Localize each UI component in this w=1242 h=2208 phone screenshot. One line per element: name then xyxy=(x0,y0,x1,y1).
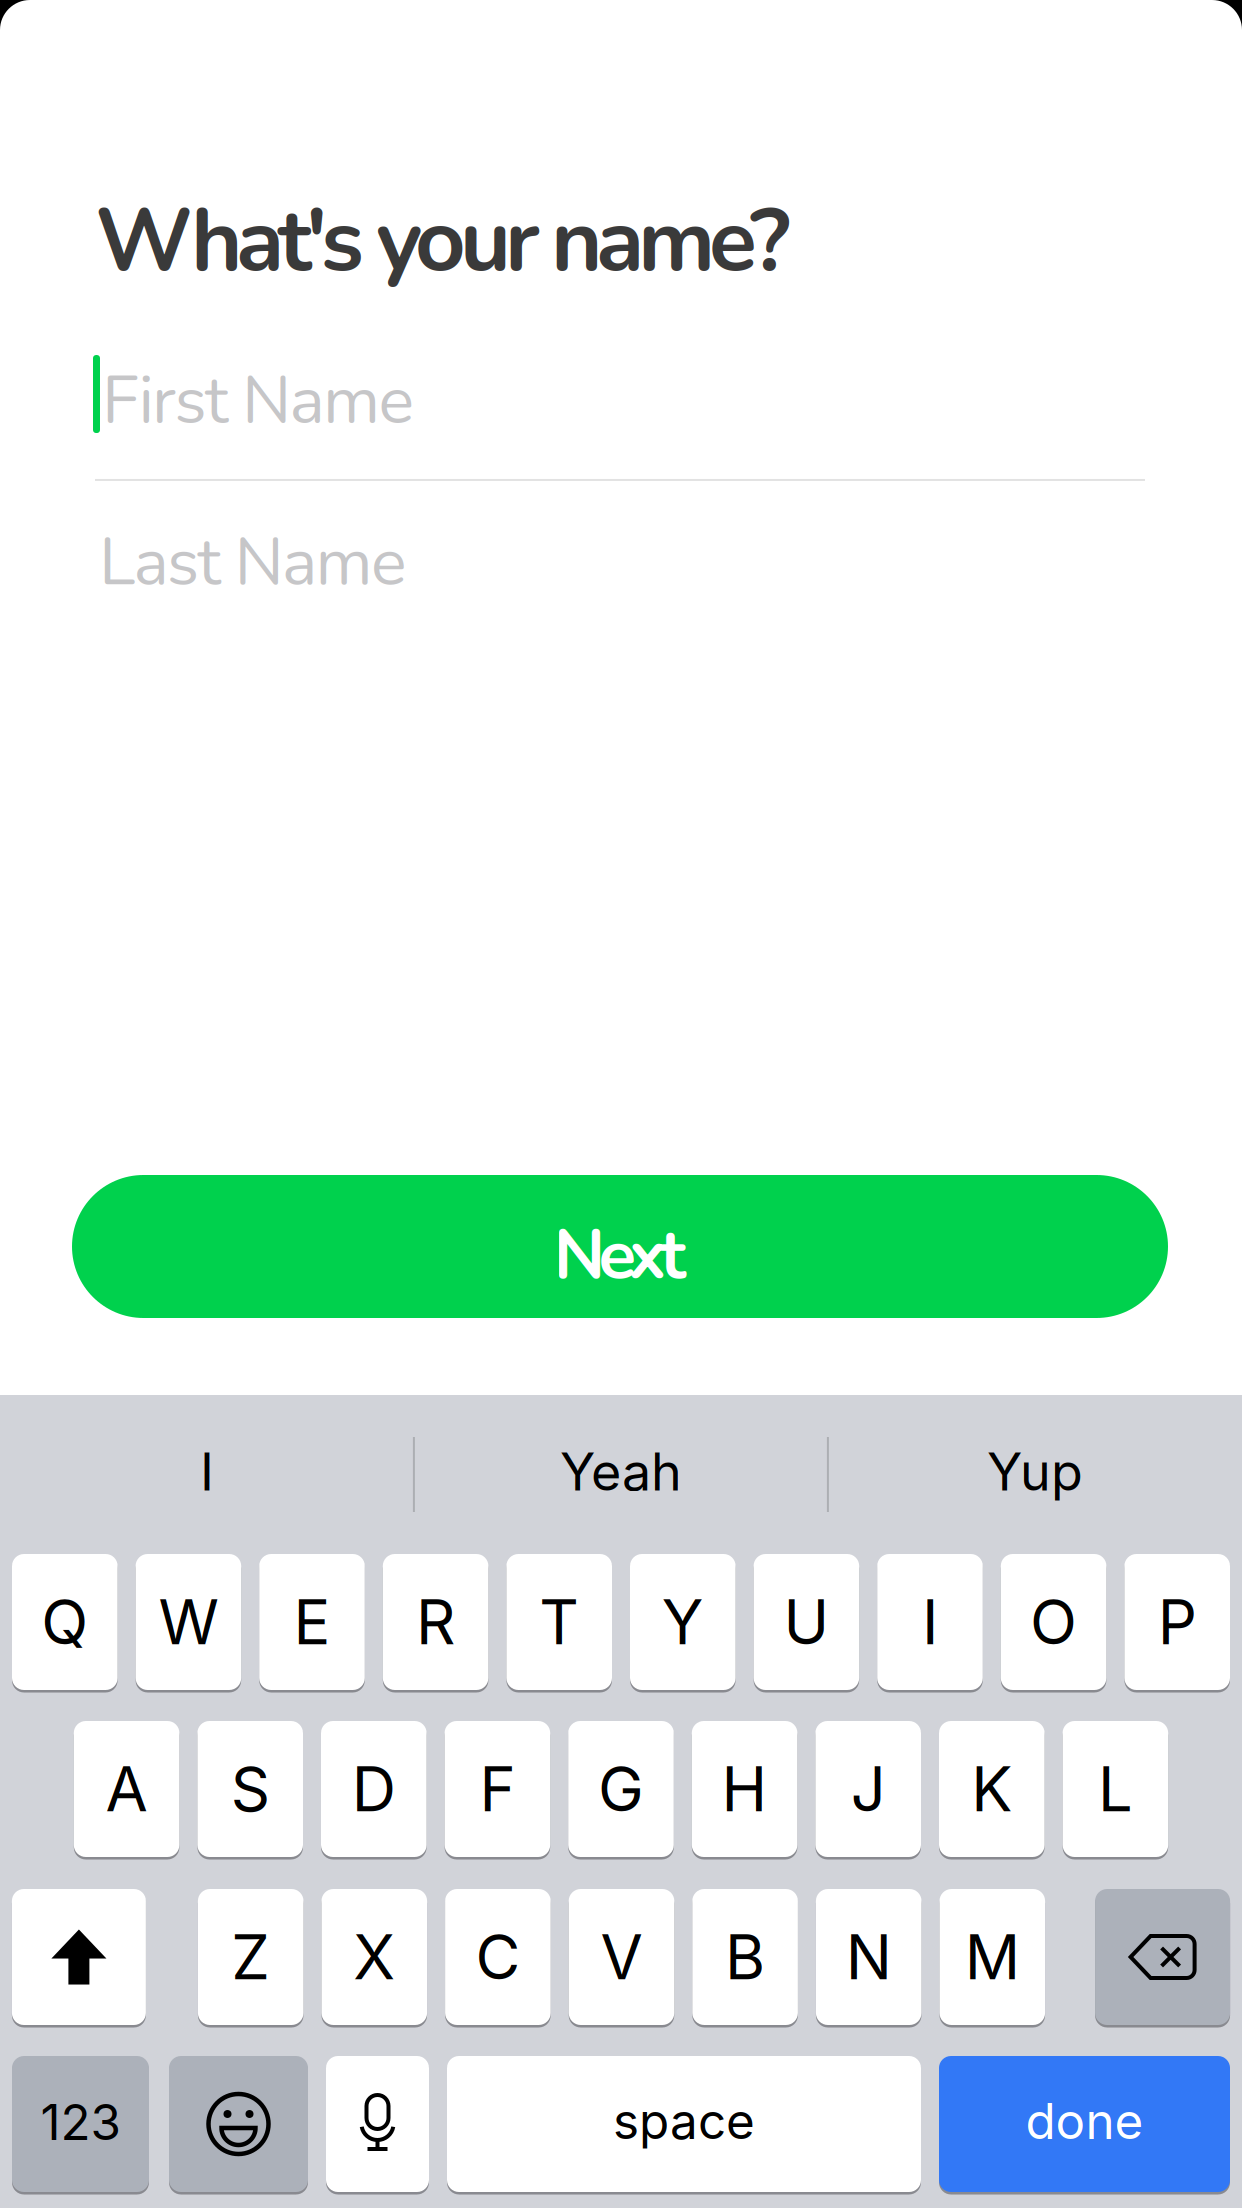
button[interactable]: G xyxy=(568,1721,674,1857)
staticText: Yeah xyxy=(560,1441,682,1502)
button[interactable]: O xyxy=(1001,1554,1106,1690)
button[interactable]: V xyxy=(569,1889,674,2025)
staticText: H xyxy=(722,1753,768,1825)
staticText: K xyxy=(971,1753,1012,1825)
staticText: space xyxy=(613,2092,755,2150)
button[interactable]: R xyxy=(383,1554,488,1690)
button[interactable]: I xyxy=(0,1395,414,1554)
button[interactable]: K xyxy=(939,1721,1045,1857)
staticText: First Name xyxy=(102,355,413,446)
button[interactable]: A xyxy=(74,1721,179,1857)
staticText: Last Name xyxy=(99,517,406,608)
staticText: W xyxy=(158,1586,218,1658)
staticText: Next xyxy=(553,1208,686,1303)
staticText: G xyxy=(598,1753,644,1825)
button[interactable]: Last Name xyxy=(0,517,406,608)
button[interactable]: Numbers xyxy=(12,2056,149,2192)
button[interactable]: J xyxy=(815,1721,921,1857)
staticText: X xyxy=(353,1921,395,1993)
button[interactable]: Delete xyxy=(1095,1889,1230,2025)
button[interactable]: C xyxy=(445,1889,551,2025)
button[interactable]: Q xyxy=(12,1554,118,1690)
staticText: B xyxy=(725,1921,765,1993)
button[interactable]: E xyxy=(259,1554,365,1690)
staticText: Yup xyxy=(987,1441,1083,1502)
button[interactable]: B xyxy=(692,1889,798,2025)
button[interactable]: First Name xyxy=(0,355,413,446)
staticText: M xyxy=(965,1921,1020,1993)
staticText: Y xyxy=(662,1586,704,1658)
staticText: T xyxy=(539,1586,579,1658)
button[interactable]: space xyxy=(447,2056,921,2192)
staticText: C xyxy=(475,1921,520,1993)
staticText: I xyxy=(922,1586,938,1658)
button[interactable]: U xyxy=(754,1554,859,1690)
button[interactable]: H xyxy=(692,1721,797,1857)
button[interactable]: Z xyxy=(198,1889,303,2025)
button[interactable]: N xyxy=(816,1889,921,2025)
button[interactable]: L xyxy=(1063,1721,1168,1857)
button[interactable]: I xyxy=(877,1554,983,1690)
button[interactable]: P xyxy=(1124,1554,1230,1690)
staticText: V xyxy=(600,1921,642,1993)
button[interactable]: M xyxy=(939,1889,1045,2025)
staticText: What's your name? xyxy=(95,181,790,301)
staticText: Z xyxy=(231,1921,270,1993)
button[interactable]: Yeah xyxy=(414,1395,828,1554)
button[interactable]: Dictation xyxy=(326,2056,429,2192)
button[interactable]: D xyxy=(321,1721,427,1857)
staticText: done xyxy=(1025,2092,1143,2150)
staticText: L xyxy=(1098,1753,1133,1825)
staticText: N xyxy=(846,1921,892,1993)
button[interactable]: F xyxy=(445,1721,550,1857)
staticText: I xyxy=(200,1441,214,1502)
staticText: J xyxy=(851,1753,886,1825)
staticText: P xyxy=(1158,1586,1197,1658)
button[interactable]: Y xyxy=(630,1554,736,1690)
button[interactable]: X xyxy=(321,1889,427,2025)
button[interactable]: Yup xyxy=(828,1395,1242,1554)
staticText: E xyxy=(293,1586,330,1658)
staticText: 123 xyxy=(40,2093,120,2151)
button[interactable]: T xyxy=(506,1554,612,1690)
button[interactable]: Emoji xyxy=(169,2056,308,2192)
staticText: S xyxy=(231,1753,270,1825)
button[interactable]: done xyxy=(939,2056,1230,2192)
button[interactable]: Next xyxy=(72,1175,1168,1318)
staticText: A xyxy=(106,1753,148,1825)
staticText: O xyxy=(1030,1586,1077,1658)
staticText: D xyxy=(352,1753,396,1825)
button[interactable]: Shift xyxy=(12,1889,146,2025)
staticText: U xyxy=(783,1586,829,1658)
staticText: R xyxy=(416,1586,455,1658)
button[interactable]: W xyxy=(136,1554,241,1690)
staticText: F xyxy=(479,1753,515,1825)
button[interactable]: S xyxy=(197,1721,303,1857)
staticText: Q xyxy=(41,1586,88,1658)
